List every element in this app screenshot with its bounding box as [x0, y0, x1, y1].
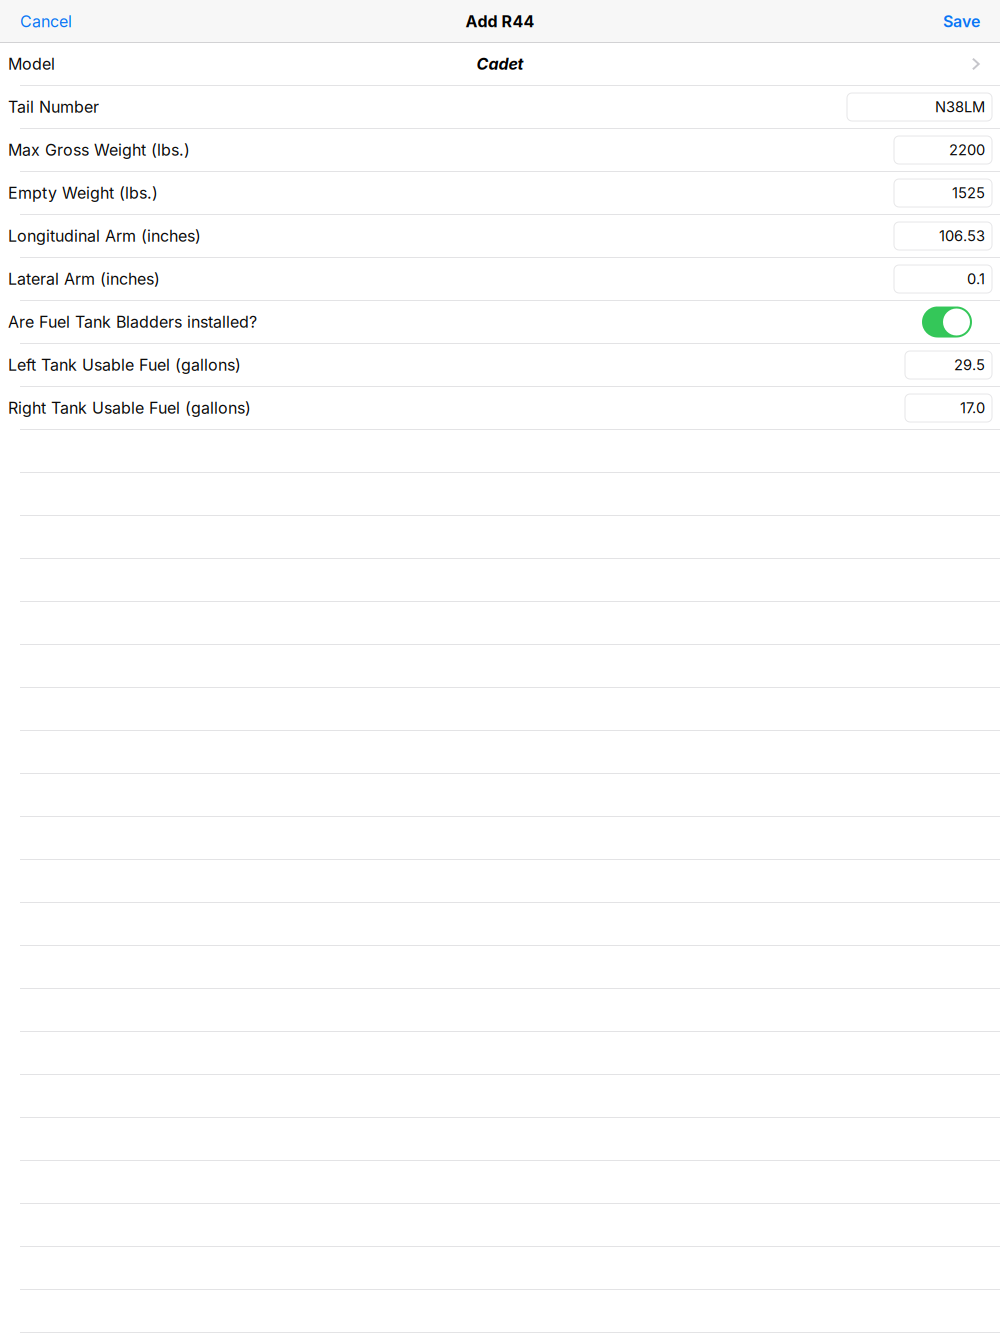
staticText: Right Tank Usable Fuel (gallons)	[8, 398, 251, 418]
staticText: 106.53	[939, 227, 985, 245]
staticText: Save	[943, 12, 980, 31]
button[interactable]: N38LM	[847, 93, 992, 121]
button[interactable]: 1525	[894, 179, 992, 207]
staticText: Cancel	[20, 12, 72, 31]
staticText: Tail Number	[8, 97, 99, 117]
staticText: 1525	[952, 184, 985, 202]
staticText: Are Fuel Tank Bladders installed?	[8, 312, 257, 332]
staticText: 29.5	[954, 356, 985, 374]
button[interactable]: Cadet	[0, 43, 1000, 86]
button[interactable]: Fuel tank bladders installed, on	[922, 306, 972, 337]
button[interactable]: 106.53	[894, 222, 992, 250]
staticText: Lateral Arm (inches)	[8, 269, 160, 289]
staticText: Cadet	[476, 54, 523, 74]
staticText: Longitudinal Arm (inches)	[8, 226, 201, 246]
button[interactable]: 0.1	[894, 265, 992, 293]
staticText: N38LM	[935, 98, 985, 116]
staticText: Add R44	[465, 12, 534, 31]
staticText: 0.1	[967, 270, 985, 288]
staticText: 2200	[949, 141, 985, 159]
button[interactable]: Cancel	[0, 0, 92, 43]
staticText: 17.0	[960, 399, 985, 417]
staticText: Empty Weight (lbs.)	[8, 183, 158, 203]
button[interactable]: 29.5	[905, 351, 992, 379]
staticText: Left Tank Usable Fuel (gallons)	[8, 355, 241, 375]
button[interactable]: Save	[923, 0, 1000, 43]
button[interactable]: 2200	[894, 136, 992, 164]
staticText: Max Gross Weight (lbs.)	[8, 140, 190, 160]
button[interactable]: 17.0	[905, 394, 992, 422]
staticText: Model	[8, 54, 55, 74]
